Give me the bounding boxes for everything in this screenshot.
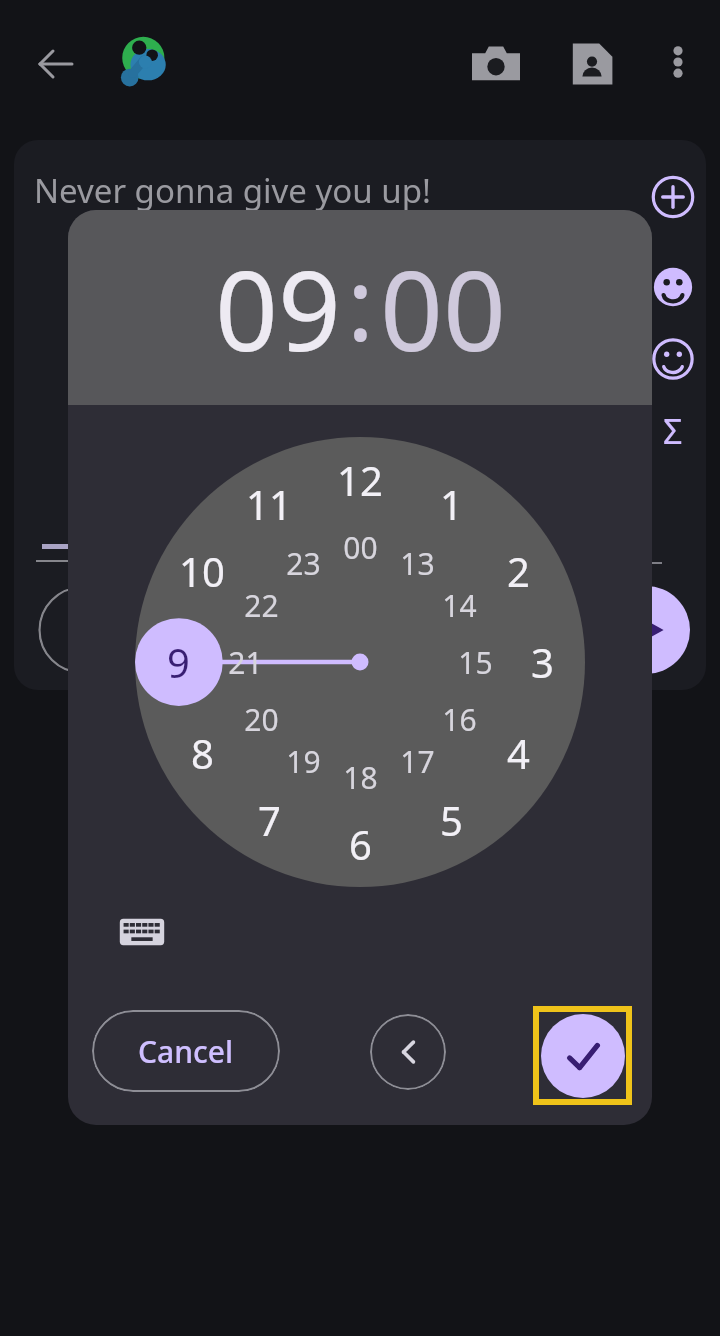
staticText: 7 [258, 793, 281, 847]
button[interactable]: 00 [380, 233, 506, 383]
staticText: 6 [349, 817, 372, 871]
staticText: 17 [400, 741, 435, 782]
staticText: 20 [244, 699, 279, 740]
button[interactable]: 13 [381, 527, 453, 599]
button[interactable]: 09 [215, 233, 341, 383]
button[interactable]: Switch to text input [112, 902, 172, 962]
staticText: 09 [215, 233, 341, 383]
staticText: 23 [286, 543, 321, 584]
button[interactable]: Cancel [92, 1010, 280, 1092]
staticText: 13 [400, 543, 435, 584]
button[interactable]: Sticker [644, 258, 702, 316]
staticText: : [347, 234, 374, 370]
button[interactable]: 23 [267, 527, 339, 599]
staticText: 10 [179, 544, 225, 598]
button[interactable]: Schedule send [38, 586, 126, 674]
staticText: 16 [442, 699, 477, 740]
staticText: 21 [228, 642, 263, 683]
button[interactable]: 21 [209, 626, 281, 698]
button[interactable]: Emoji [644, 330, 702, 388]
button[interactable]: 1 [415, 468, 487, 540]
button[interactable]: 10 [166, 535, 238, 607]
button[interactable]: 18 [324, 741, 396, 813]
button[interactable]: More options [650, 34, 706, 90]
button[interactable]: 9 [142, 626, 214, 698]
staticText: Never gonna give you up! [34, 168, 594, 213]
button[interactable]: Contact [562, 34, 622, 94]
button[interactable]: App logo [110, 30, 178, 98]
staticText: 9 [167, 635, 190, 689]
staticText: 14 [442, 585, 477, 626]
staticText: 19 [286, 741, 321, 782]
staticText: 4 [507, 726, 530, 780]
button[interactable]: 5 [415, 784, 487, 856]
staticText: Cancel [138, 1031, 234, 1072]
button[interactable]: 22 [225, 569, 297, 641]
staticText: 11 [246, 477, 292, 531]
staticText: 8 [191, 726, 214, 780]
button[interactable]: 8 [166, 717, 238, 789]
button[interactable]: 19 [267, 725, 339, 797]
button[interactable]: 11 [233, 468, 305, 540]
button[interactable]: 15 [439, 626, 511, 698]
staticText: 22 [244, 585, 279, 626]
button[interactable]: Camera [466, 34, 526, 94]
button[interactable]: 00 [324, 511, 396, 583]
button[interactable]: Send [602, 586, 690, 674]
staticText: 1 [440, 477, 463, 531]
button[interactable]: Previous [370, 1014, 446, 1090]
staticText: 12 [337, 453, 383, 507]
button[interactable]: 16 [423, 683, 495, 755]
staticText: 2 [507, 544, 530, 598]
button[interactable]: 20 [225, 683, 297, 755]
button[interactable]: OK [533, 1006, 632, 1105]
staticText: 00 [343, 527, 378, 568]
button[interactable]: 6 [324, 808, 396, 880]
button[interactable]: 7 [233, 784, 305, 856]
staticText: 5 [440, 793, 463, 847]
button[interactable]: Add [644, 168, 702, 226]
button[interactable]: 12 [324, 444, 396, 516]
button[interactable]: 3 [506, 626, 578, 698]
staticText: 3 [531, 635, 554, 689]
button[interactable]: 14 [423, 569, 495, 641]
staticText: 15 [458, 642, 493, 683]
staticText: 18 [343, 757, 378, 798]
button[interactable]: Variables [644, 402, 702, 460]
button[interactable]: Back [26, 34, 86, 94]
button[interactable]: 4 [482, 717, 554, 789]
staticText: 00 [380, 233, 506, 383]
button[interactable]: 2 [482, 535, 554, 607]
button[interactable]: 17 [381, 725, 453, 797]
staticText: Σ [663, 408, 683, 454]
